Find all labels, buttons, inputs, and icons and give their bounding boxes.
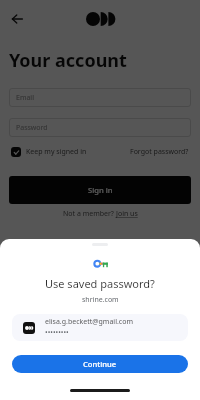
button[interactable]: Back [6, 8, 28, 30]
button[interactable]: Password [9, 118, 191, 137]
staticText: Password [16, 123, 48, 133]
staticText: Sign in [88, 185, 113, 195]
staticText: elisa.g.beckett@gmail.com [45, 317, 133, 327]
staticText: Continue [83, 359, 117, 369]
staticText: Use saved password? [45, 276, 155, 291]
staticText: Email [16, 93, 34, 103]
button[interactable]: elisa.g.beckett@gmail.com [12, 314, 188, 341]
button[interactable]: Forgot password? [130, 147, 189, 157]
button[interactable]: Continue [12, 355, 188, 373]
staticText: Your account [9, 48, 127, 73]
staticText: shrine.com [82, 295, 119, 305]
button[interactable] [11, 147, 21, 157]
button[interactable]: Sign in [9, 176, 191, 204]
button[interactable]: Email [9, 88, 191, 107]
button[interactable]: Join us [116, 209, 138, 219]
staticText: ••••••••• [45, 328, 69, 338]
staticText: Keep my signed in [26, 147, 87, 157]
staticText: Not a member? [63, 209, 116, 219]
